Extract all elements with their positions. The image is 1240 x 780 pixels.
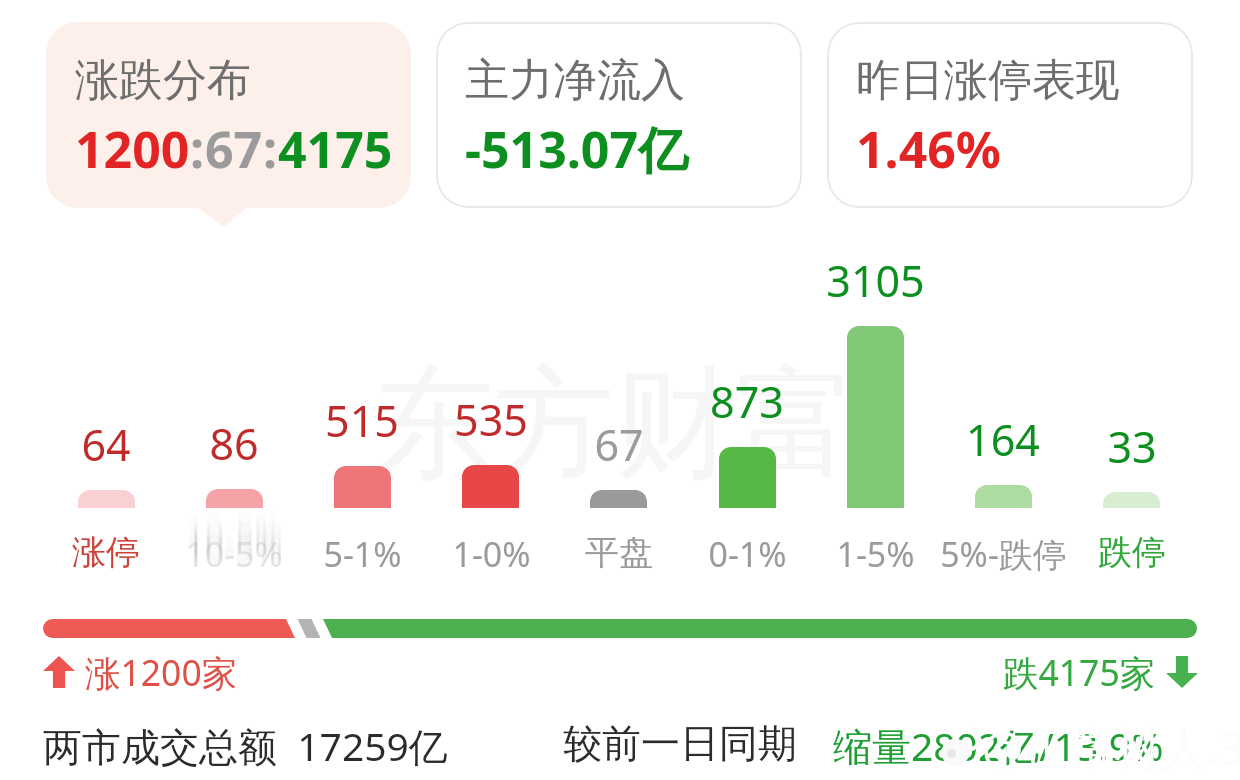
staticText: 67 (205, 115, 263, 183)
staticText: 昨日涨停表现 (856, 53, 1120, 108)
staticText: 10-5% (185, 500, 283, 546)
button[interactable]: 跌停 33 (1068, 250, 1196, 572)
staticText: 1-0% (452, 531, 531, 577)
staticText: 10-5% (185, 517, 283, 563)
button[interactable]: 涨跌分布 (46, 22, 411, 208)
staticText: : (190, 115, 205, 183)
staticText: 10-5% (185, 507, 283, 553)
staticText: 4175 (278, 115, 393, 183)
staticText: 较前一日同期 (563, 719, 797, 768)
staticText: 10-5% (185, 525, 283, 571)
staticText: 10-5% (185, 511, 283, 557)
staticText: 主力净流入 (465, 53, 685, 108)
button[interactable]: 昨日涨停表现 (827, 22, 1193, 208)
staticText: 3105 (826, 251, 925, 310)
button[interactable]: Advancing stocks 1200 (43, 648, 238, 696)
button[interactable]: Declining stocks 4175 (1003, 648, 1198, 696)
button[interactable]: 平盘 67 (555, 250, 683, 572)
staticText: : (263, 115, 278, 183)
staticText: -513.07亿 (465, 115, 689, 183)
staticText: 1-5% (836, 531, 915, 577)
staticText: 跌4175家 (1003, 648, 1156, 696)
staticText: 10-5% (185, 503, 283, 549)
staticText: 两市成交总额 17259亿 (43, 719, 448, 772)
staticText: 10-5% (185, 495, 283, 541)
staticText: 67 (594, 415, 644, 474)
staticText: 10-5% (185, 502, 283, 548)
staticText: 东方财富 (373, 348, 857, 500)
staticText: 1200 (75, 115, 190, 183)
staticText: 10-5% (185, 506, 283, 552)
staticText: @正常树人.3PONR (982, 716, 1240, 779)
staticText: 涨1200家 (85, 648, 238, 696)
staticText: 10-5% (185, 499, 283, 545)
staticText: 10-5% (185, 528, 283, 574)
staticText: 10-5% (185, 518, 283, 564)
staticText: 5%-跌停 (940, 531, 1067, 577)
button[interactable]: 涨停 64 (42, 250, 170, 572)
staticText: 10-5% (185, 524, 283, 570)
staticText: 10-5% (185, 530, 283, 576)
button[interactable]: 0-1% 873 (683, 250, 811, 572)
staticText: 164 (966, 410, 1040, 469)
staticText: 涨停 (72, 531, 140, 574)
staticText: 10-5% (185, 497, 283, 543)
staticText: 10-5% (185, 527, 283, 573)
staticText: 10-5% (185, 513, 283, 559)
staticText: 缩量2802亿/13.9% (833, 719, 1164, 772)
staticText: 873 (710, 372, 784, 431)
staticText: 10-5% (185, 523, 283, 569)
staticText: 1.46% (856, 115, 1001, 183)
staticText: 0-1% (708, 531, 787, 577)
button[interactable]: 5%-跌停 164 (939, 250, 1067, 572)
staticText: 跌停 (1098, 531, 1166, 574)
staticText: 涨跌分布 (75, 53, 251, 108)
button[interactable]: 1-5% 3105 (811, 250, 939, 572)
button[interactable]: 10-5% 86 (170, 250, 298, 572)
staticText: 535 (454, 390, 528, 449)
staticText: 10-5% (185, 509, 283, 555)
staticText: 515 (325, 391, 399, 450)
staticText: 10-5% (185, 514, 283, 560)
staticText: 64 (81, 415, 131, 474)
staticText: 10-5% (185, 496, 283, 542)
staticText: 10-5% (185, 531, 283, 577)
staticText: 平盘 (585, 531, 653, 574)
button[interactable]: 1-0% 535 (427, 250, 555, 572)
staticText: 10-5% (185, 521, 283, 567)
staticText: 10-5% (185, 520, 283, 566)
staticText: 10-5% (185, 510, 283, 556)
staticText: 33 (1107, 417, 1157, 476)
staticText: 86 (209, 414, 259, 473)
staticText: 10-5% (185, 516, 283, 562)
button[interactable]: 主力净流入 (436, 22, 802, 208)
staticText: 5-1% (323, 531, 402, 577)
staticText: 10-5% (185, 504, 283, 550)
button[interactable]: 5-1% 515 (298, 250, 426, 572)
